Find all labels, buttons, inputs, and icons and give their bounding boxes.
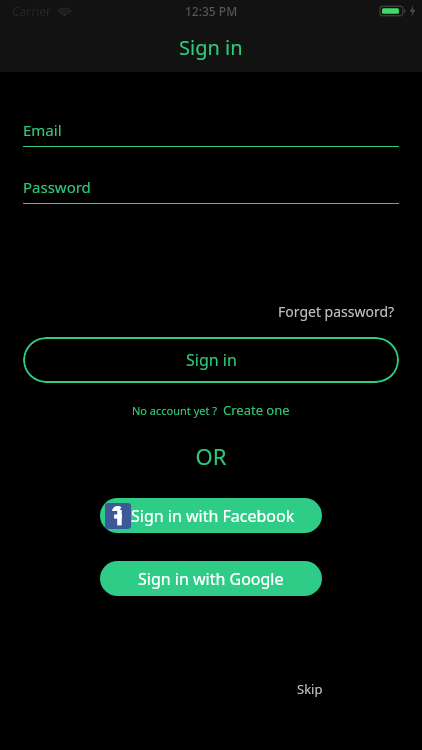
button[interactable]: Sign in with Google bbox=[100, 561, 322, 596]
staticText: OR bbox=[23, 441, 399, 471]
button[interactable]: Skip bbox=[291, 676, 329, 702]
button[interactable]: Forget password? bbox=[274, 300, 399, 323]
staticText: 12:35 PM bbox=[185, 3, 238, 19]
staticText: Create one bbox=[223, 401, 290, 419]
staticText: Sign in bbox=[186, 349, 237, 371]
button[interactable]: Sign in with Facebook bbox=[100, 498, 322, 533]
button[interactable]: Create one bbox=[223, 401, 290, 419]
button[interactable]: Sign in bbox=[23, 337, 399, 383]
staticText: Forget password? bbox=[278, 302, 395, 321]
staticText: Carrier bbox=[12, 3, 52, 19]
button[interactable]: Password bbox=[23, 177, 399, 204]
staticText: Sign in with Facebook bbox=[131, 505, 295, 527]
staticText: Password bbox=[23, 177, 91, 197]
button[interactable]: Email bbox=[23, 120, 399, 147]
staticText: Skip bbox=[297, 680, 323, 698]
staticText: Sign in with Google bbox=[138, 568, 284, 590]
staticText: Email bbox=[23, 120, 62, 140]
staticText: No account yet ? bbox=[132, 403, 218, 418]
staticText: Sign in bbox=[179, 34, 243, 61]
